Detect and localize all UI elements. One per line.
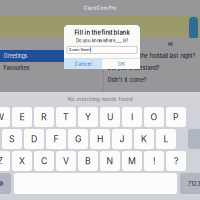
button[interactable]: M <box>122 151 142 171</box>
staticText: M <box>128 156 136 166</box>
staticText: B <box>85 156 91 166</box>
button[interactable]: S <box>2 129 22 149</box>
button[interactable]: Greetings <box>0 50 103 62</box>
button[interactable]: All <box>157 39 183 49</box>
button[interactable]: Didn't it come? <box>104 74 200 86</box>
staticText: H <box>97 134 103 144</box>
button[interactable]: G <box>68 129 88 149</box>
button[interactable]: ! <box>144 151 164 171</box>
staticText: ! <box>153 156 155 166</box>
button[interactable]: I <box>122 107 142 127</box>
button[interactable]: O <box>144 107 164 127</box>
staticText: T <box>63 112 69 122</box>
staticText: K <box>141 134 147 144</box>
staticText: Z <box>0 156 2 166</box>
button[interactable]: ? <box>166 151 186 171</box>
button[interactable]: B <box>78 151 98 171</box>
staticText: OK <box>118 61 125 67</box>
button[interactable]: Favourites <box>0 62 103 74</box>
button[interactable]: Did you see the football last night? <box>104 50 200 62</box>
button[interactable]: Speak <box>189 17 198 39</box>
button[interactable]: W <box>0 107 10 127</box>
staticText: All <box>167 41 172 47</box>
staticText: W <box>0 112 4 122</box>
staticText: I <box>131 112 133 122</box>
button[interactable]: V <box>56 151 76 171</box>
button[interactable]: C <box>34 151 54 171</box>
staticText: ? <box>174 156 178 166</box>
staticText: E <box>19 112 24 122</box>
button[interactable]: Z <box>0 151 10 171</box>
button[interactable]: Cancel <box>64 59 102 69</box>
button[interactable]: R <box>34 107 54 127</box>
button[interactable]: Y <box>78 107 98 127</box>
button[interactable]: D <box>24 129 44 149</box>
button[interactable]: P <box>166 107 186 127</box>
staticText: R <box>41 112 47 122</box>
staticText: G <box>75 134 81 144</box>
button[interactable]: H <box>90 129 110 149</box>
staticText: V <box>63 156 69 166</box>
button[interactable]: X <box>12 151 32 171</box>
staticText: Fill in the first blank <box>74 29 129 36</box>
staticText: Y <box>85 112 91 122</box>
staticText: X <box>19 156 25 166</box>
staticText: U <box>107 112 113 122</box>
staticText: Greetings <box>3 53 27 59</box>
button[interactable]: .?123 <box>180 173 200 194</box>
staticText: Queen Street <box>68 48 89 52</box>
staticText: P <box>173 112 179 122</box>
staticText: L <box>163 134 168 144</box>
button[interactable]: Did you understand? <box>104 62 200 74</box>
staticText: C <box>41 156 47 166</box>
button[interactable]: F <box>46 129 66 149</box>
staticText: Favourites <box>3 65 29 71</box>
staticText: J <box>119 134 124 144</box>
staticText: O <box>150 112 157 122</box>
staticText: Cancel <box>74 61 91 67</box>
staticText: No matching words found <box>67 96 132 102</box>
staticText: N <box>106 156 113 166</box>
button[interactable]: Next keyboard <box>0 173 11 194</box>
staticText: S <box>9 134 15 144</box>
staticText: F <box>53 134 58 144</box>
button[interactable]: T <box>56 107 76 127</box>
staticText: ClaroCom Pro <box>83 5 116 11</box>
button[interactable]: N <box>100 151 120 171</box>
staticText: .?123 <box>187 180 200 187</box>
button[interactable]: J <box>112 129 132 149</box>
staticText: Didn't it come? <box>107 77 146 83</box>
button[interactable]: U <box>100 107 120 127</box>
staticText: Did you see the football last night? <box>107 53 195 59</box>
staticText: D <box>31 134 37 144</box>
button[interactable]: L <box>156 129 176 149</box>
staticText: Did you understand? <box>107 65 159 71</box>
button[interactable]: OK <box>102 59 140 69</box>
button[interactable]: K <box>134 129 154 149</box>
staticText: Do you know where ___ is? <box>76 38 128 43</box>
button[interactable]: E <box>12 107 32 127</box>
